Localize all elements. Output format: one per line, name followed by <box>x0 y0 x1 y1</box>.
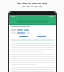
button[interactable]: Secondary link <box>37 36 46 37</box>
button[interactable]: Detail value <box>17 29 23 31</box>
button[interactable]: Primary link <box>19 36 28 37</box>
button[interactable]: App header <box>9 15 56 25</box>
